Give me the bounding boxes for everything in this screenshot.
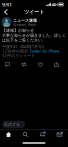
button[interactable]: Share	[50, 60, 63, 69]
staticText: 返信する	[4, 122, 20, 127]
staticText: 12 件のリツイート	[2, 53, 35, 58]
button[interactable]: Messages	[51, 130, 68, 138]
staticText: 午後9:41 · 2024年1月1日	[2, 44, 44, 49]
staticText: ニュース速報	[13, 18, 37, 23]
staticText: 1,234 件の表示	[2, 48, 28, 54]
button[interactable]: Notifications	[34, 130, 51, 138]
button[interactable]: Back	[1, 7, 10, 16]
staticText: 9:41	[2, 1, 12, 8]
button[interactable]: Home	[0, 130, 17, 138]
staticText: 【速報】お知らせ 大事な知らせが届きました。詳しく は以下をご覧ください。	[2, 28, 66, 43]
staticText: Twitter for iPhone	[29, 48, 59, 54]
staticText: @news_flash	[13, 22, 36, 27]
staticText: ツイート	[24, 9, 44, 15]
button[interactable]: Reply	[1, 60, 14, 69]
button[interactable]: Twitter for iPhone	[29, 48, 59, 54]
button[interactable]: Search	[17, 130, 34, 138]
button[interactable]: Retweet	[17, 60, 30, 69]
button[interactable]: Like	[34, 60, 47, 69]
button[interactable]: 返信する	[2, 121, 25, 128]
